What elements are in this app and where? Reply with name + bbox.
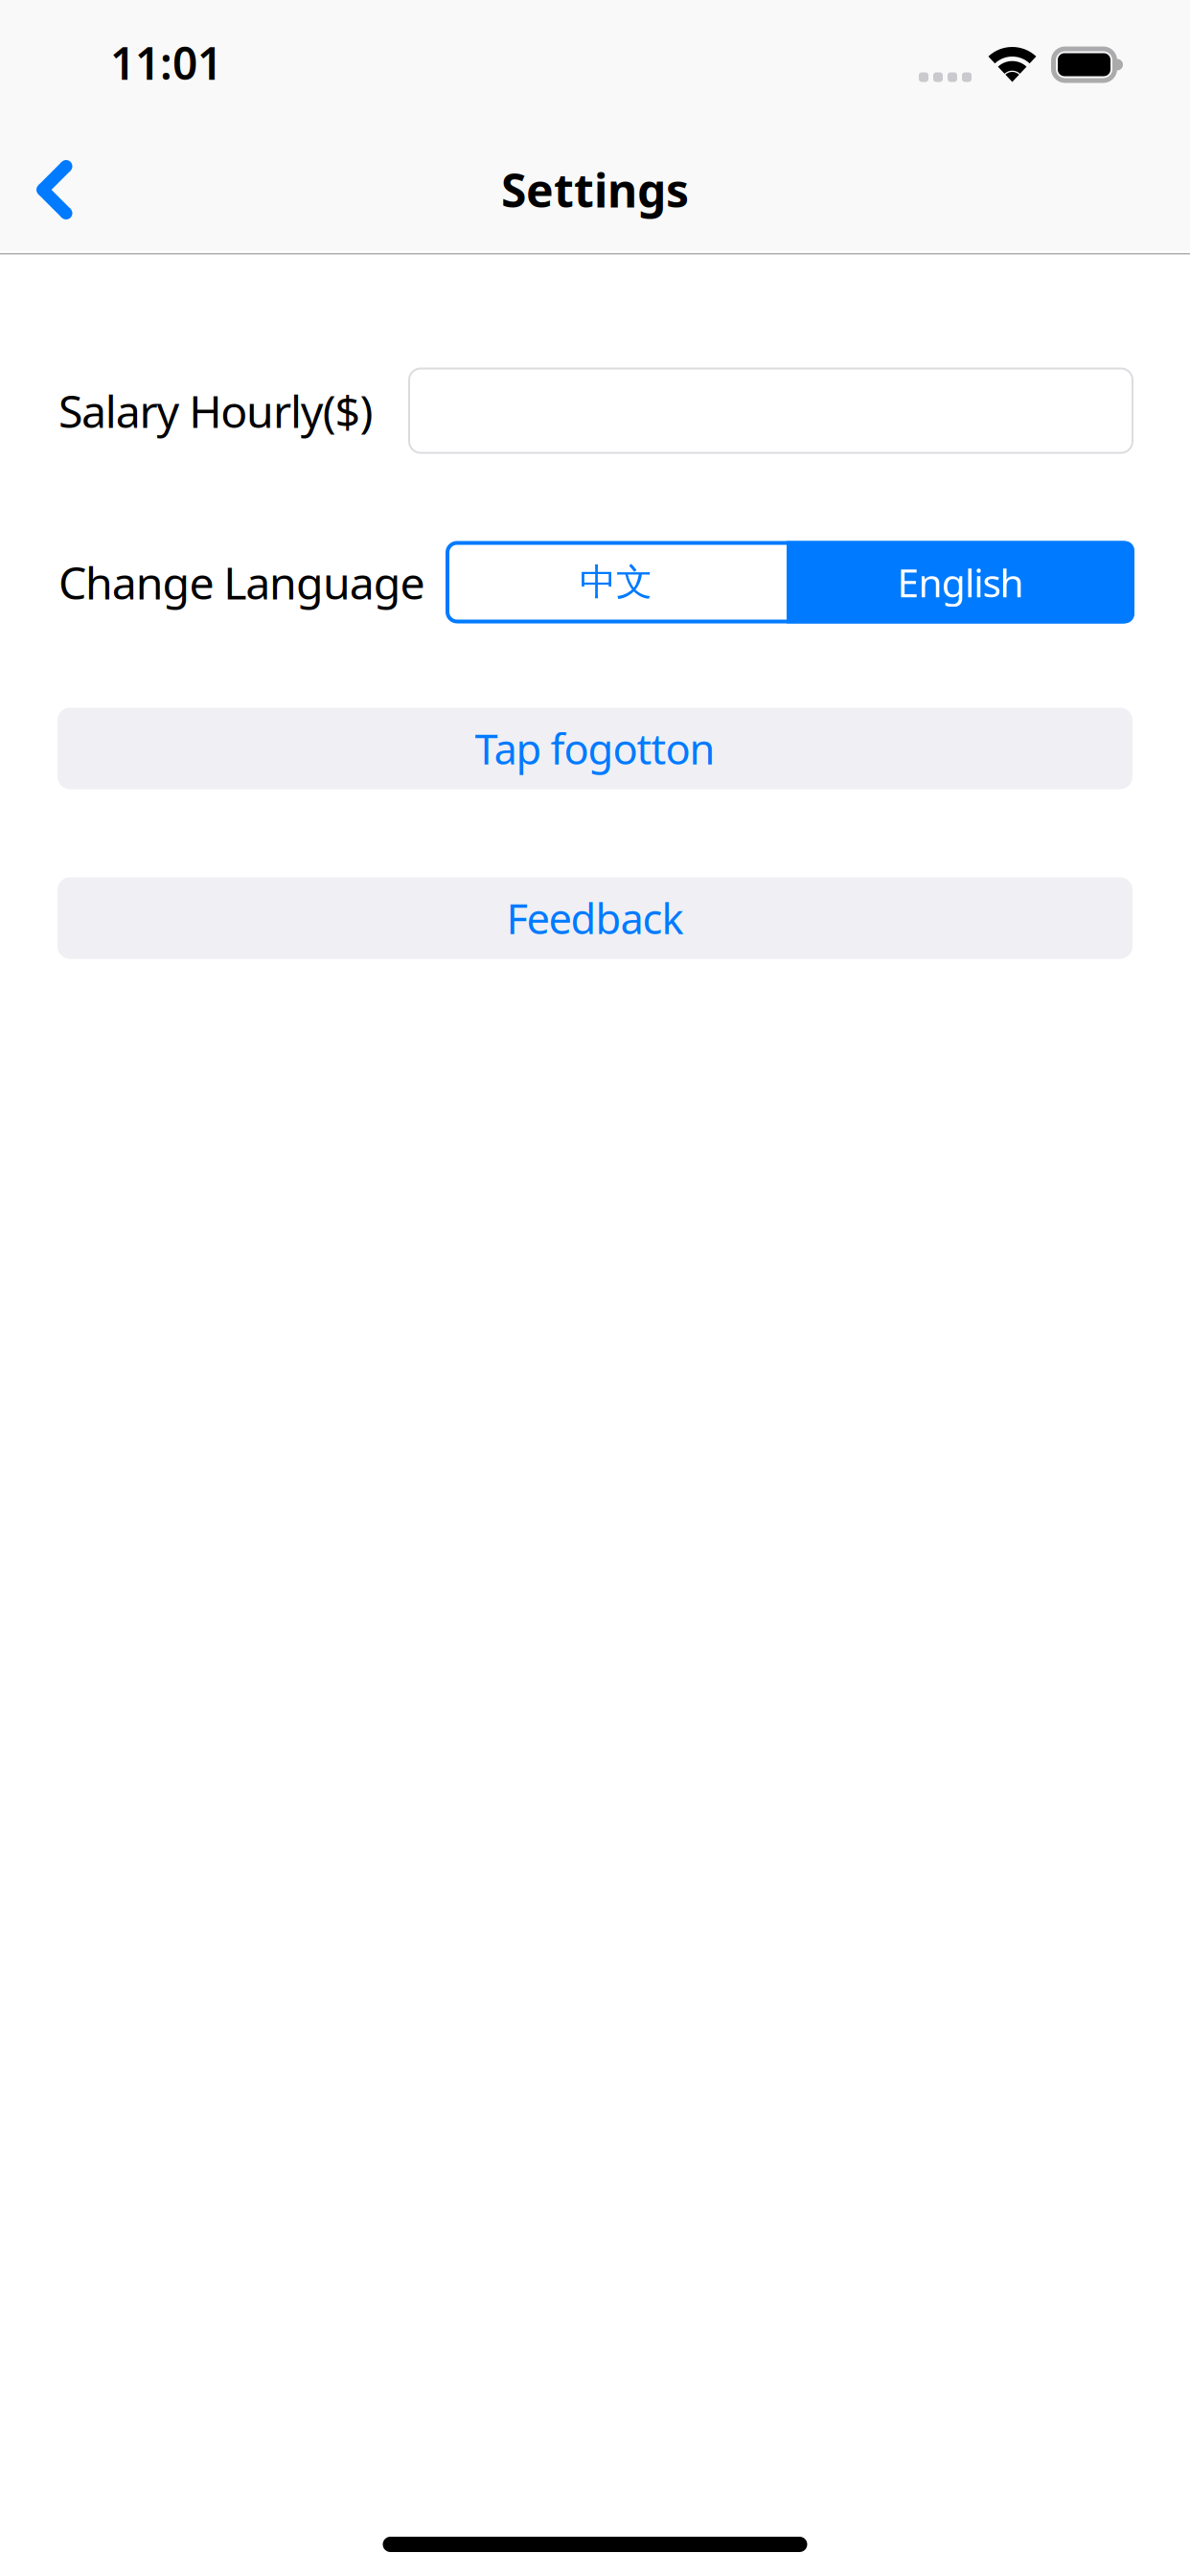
- button[interactable]: 中文: [446, 541, 787, 623]
- staticText: Feedback: [506, 890, 684, 946]
- staticText: 中文: [580, 559, 652, 605]
- staticText: Change Language: [58, 552, 425, 612]
- staticText: 11:01: [110, 33, 222, 93]
- button[interactable]: English: [787, 541, 1134, 623]
- staticText: Salary Hourly($): [58, 380, 373, 441]
- staticText: Settings: [501, 158, 689, 221]
- button[interactable]: Salary hourly amount: [408, 368, 1133, 454]
- button[interactable]: Back: [0, 126, 108, 252]
- button[interactable]: Tap fogotton: [57, 708, 1133, 789]
- staticText: Tap fogotton: [475, 720, 715, 777]
- staticText: English: [897, 556, 1024, 609]
- button[interactable]: Feedback: [57, 877, 1133, 959]
